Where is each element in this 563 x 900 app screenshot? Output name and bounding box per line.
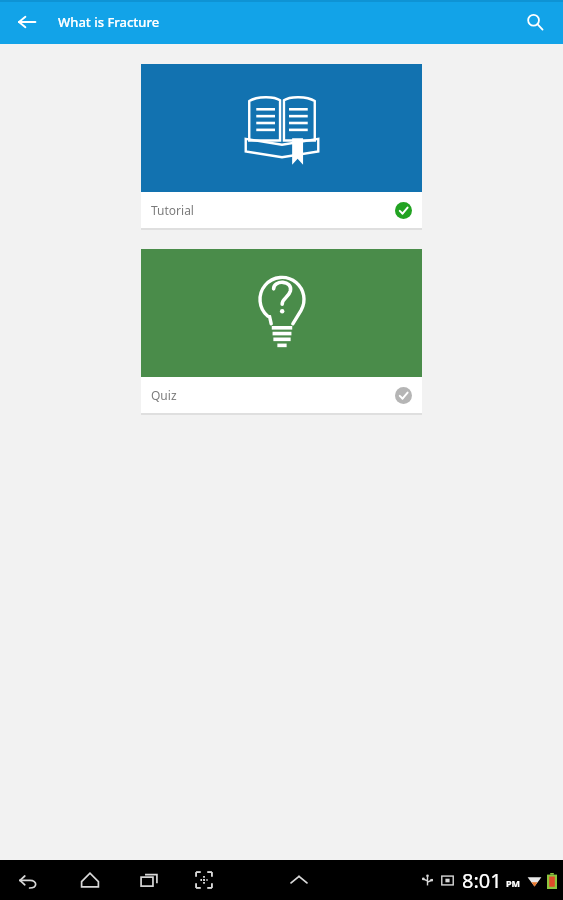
button[interactable]: Quiz	[141, 249, 422, 415]
button[interactable]: Home	[72, 862, 108, 898]
staticText: PM	[506, 877, 521, 889]
button[interactable]: Back	[10, 862, 46, 898]
button[interactable]: Back	[10, 5, 44, 39]
button[interactable]: Show notifications	[282, 863, 316, 897]
button[interactable]: Recent apps	[131, 862, 167, 898]
button[interactable]: Search	[517, 4, 553, 40]
staticText: Quiz	[151, 387, 395, 403]
staticText: What is Fracture	[58, 13, 160, 31]
staticText: 8:01	[462, 867, 502, 894]
button[interactable]: Screenshot	[186, 862, 222, 898]
button[interactable]: Tutorial	[141, 64, 422, 230]
staticText: Tutorial	[151, 202, 395, 218]
